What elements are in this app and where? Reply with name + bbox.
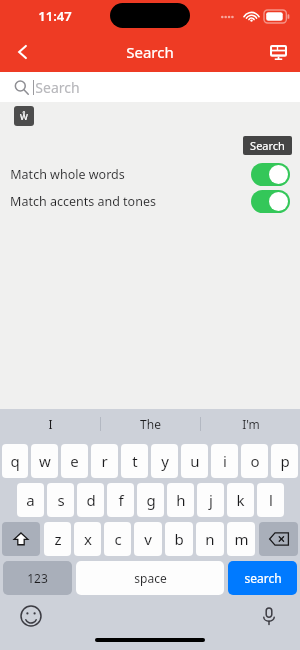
- button[interactable]: y: [151, 444, 178, 478]
- button[interactable]: z: [44, 522, 71, 556]
- button[interactable]: Keyboard layout: [256, 32, 300, 72]
- staticText: s: [57, 490, 65, 510]
- button[interactable]: l: [257, 483, 284, 517]
- staticText: k: [236, 490, 245, 510]
- button[interactable]: x: [74, 522, 101, 556]
- staticText: h: [176, 490, 186, 510]
- button[interactable]: t: [121, 444, 148, 478]
- staticText: b: [174, 529, 184, 549]
- button[interactable]: i: [211, 444, 238, 478]
- button[interactable]: v: [134, 522, 162, 556]
- staticText: space: [134, 570, 167, 586]
- staticText: Search: [35, 78, 80, 97]
- staticText: Search: [250, 138, 285, 153]
- staticText: 11:47: [38, 7, 72, 25]
- button[interactable]: Match accents and tones: [0, 188, 300, 215]
- button[interactable]: b: [165, 522, 193, 556]
- button[interactable]: o: [241, 444, 268, 478]
- button[interactable]: Match whole words: [0, 161, 300, 188]
- staticText: r: [101, 451, 108, 471]
- staticText: m: [234, 529, 249, 549]
- button[interactable]: s: [47, 483, 74, 517]
- staticText: p: [280, 451, 290, 471]
- staticText: e: [70, 451, 79, 471]
- staticText: c: [114, 529, 122, 549]
- staticText: t: [132, 451, 138, 471]
- staticText: x: [84, 529, 92, 549]
- button[interactable]: f: [107, 483, 134, 517]
- staticText: g: [146, 490, 156, 510]
- staticText: 123: [27, 570, 48, 586]
- staticText: Match whole words: [10, 166, 125, 183]
- button[interactable]: 123: [3, 561, 72, 595]
- button[interactable]: I'm: [201, 409, 300, 439]
- staticText: search: [244, 570, 282, 586]
- button[interactable]: p: [271, 444, 298, 478]
- staticText: z: [54, 529, 62, 549]
- button[interactable]: k: [227, 483, 254, 517]
- staticText: y: [161, 451, 169, 471]
- button[interactable]: j: [197, 483, 224, 517]
- button[interactable]: Accent key: [14, 106, 34, 126]
- button[interactable]: The: [101, 409, 200, 439]
- button[interactable]: r: [91, 444, 118, 478]
- staticText: q: [10, 451, 20, 471]
- button[interactable]: I: [0, 409, 100, 439]
- button[interactable]: d: [77, 483, 104, 517]
- staticText: d: [86, 490, 96, 510]
- staticText: ẘ: [20, 109, 28, 123]
- button[interactable]: search: [228, 561, 297, 595]
- button[interactable]: u: [181, 444, 208, 478]
- staticText: u: [190, 451, 200, 471]
- button[interactable]: a: [17, 483, 44, 517]
- button[interactable]: Dictation: [256, 603, 282, 629]
- staticText: i: [223, 451, 227, 471]
- button[interactable]: c: [104, 522, 131, 556]
- button[interactable]: space: [76, 561, 224, 595]
- staticText: w: [39, 451, 51, 471]
- staticText: I'm: [242, 416, 260, 432]
- staticText: a: [26, 490, 35, 510]
- button[interactable]: w: [31, 444, 58, 478]
- button[interactable]: g: [137, 483, 164, 517]
- button[interactable]: Search: [0, 72, 300, 102]
- button[interactable]: h: [167, 483, 194, 517]
- button[interactable]: Search: [243, 136, 292, 155]
- button[interactable]: Backspace: [259, 522, 298, 556]
- button[interactable]: Emoji: [18, 603, 44, 629]
- staticText: The: [140, 416, 161, 432]
- button[interactable]: Shift: [2, 522, 40, 556]
- staticText: Match accents and tones: [10, 193, 156, 210]
- staticText: f: [118, 490, 124, 510]
- button[interactable]: m: [227, 522, 255, 556]
- button[interactable]: e: [61, 444, 88, 478]
- staticText: n: [205, 529, 215, 549]
- button[interactable]: n: [196, 522, 224, 556]
- staticText: v: [144, 529, 152, 549]
- staticText: Search: [126, 42, 174, 62]
- staticText: I: [48, 416, 53, 432]
- staticText: l: [269, 490, 273, 510]
- button[interactable]: Back: [0, 32, 46, 72]
- staticText: j: [209, 490, 213, 510]
- staticText: o: [250, 451, 260, 471]
- button[interactable]: q: [2, 444, 28, 478]
